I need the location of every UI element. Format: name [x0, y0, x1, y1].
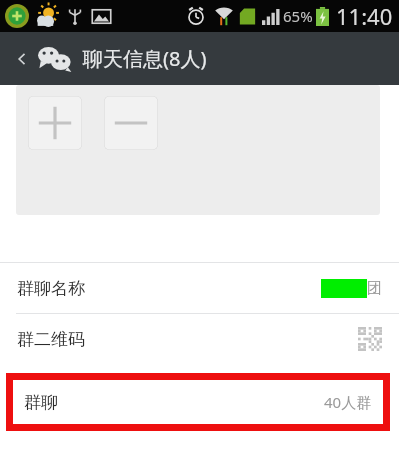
- staticText: 群二维码: [17, 329, 85, 350]
- staticText: 群聊名称: [17, 278, 85, 299]
- staticText: 11:40: [336, 1, 393, 31]
- button[interactable]: Back: [9, 46, 35, 72]
- staticText: 聊天信息(8人): [83, 45, 207, 72]
- staticText: 团: [367, 279, 382, 298]
- button[interactable]: 群聊: [13, 380, 383, 424]
- staticText: 40人群: [324, 392, 372, 412]
- staticText: 65%: [283, 6, 313, 26]
- staticText: 群聊: [24, 392, 58, 413]
- button[interactable]: 群二维码: [0, 314, 399, 364]
- button[interactable]: Remove member: [104, 96, 158, 150]
- button[interactable]: 群聊名称: [0, 263, 399, 313]
- button[interactable]: Add member: [28, 96, 82, 150]
